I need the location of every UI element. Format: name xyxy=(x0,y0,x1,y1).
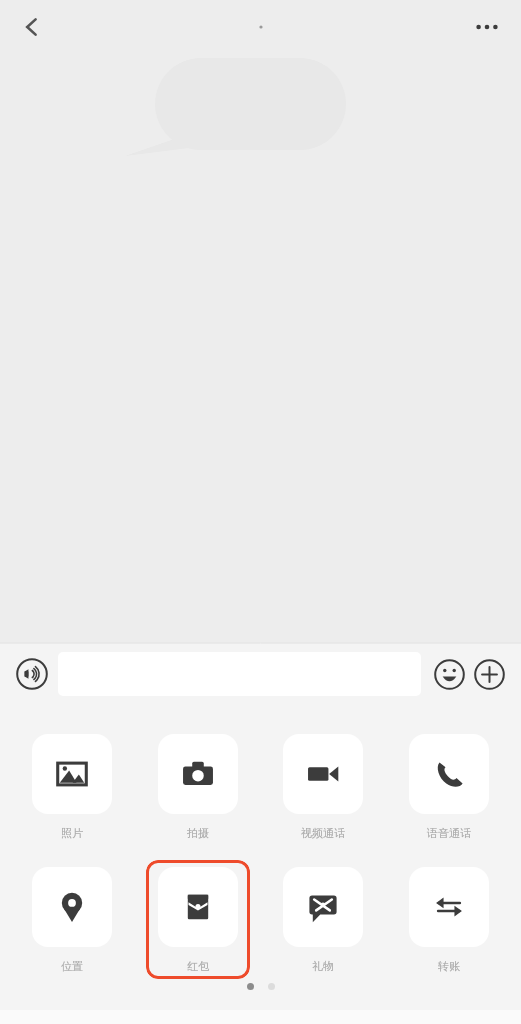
button[interactable]: More attachments xyxy=(469,654,509,694)
button[interactable]: Emoji xyxy=(429,654,469,694)
button[interactable]: 礼物 xyxy=(271,860,375,979)
button[interactable]: 拍摄 xyxy=(146,727,250,846)
button[interactable]: 位置 xyxy=(20,860,124,979)
button[interactable]: 照片 xyxy=(20,727,124,846)
staticText: 拍摄 xyxy=(187,826,209,840)
staticText: 语音通话 xyxy=(427,826,471,840)
staticText: 红包 xyxy=(187,959,209,973)
button[interactable]: 红包 xyxy=(146,860,250,979)
button[interactable]: 视频通话 xyxy=(271,727,375,846)
button[interactable]: 转账 xyxy=(397,860,501,979)
button[interactable]: Back xyxy=(12,7,52,47)
staticText: 照片 xyxy=(61,826,83,840)
staticText: 视频通话 xyxy=(301,826,345,840)
staticText: 位置 xyxy=(61,959,83,973)
button[interactable]: Voice message xyxy=(12,654,52,694)
button[interactable]: More options xyxy=(465,5,509,49)
staticText: 转账 xyxy=(438,959,460,973)
staticText: 礼物 xyxy=(312,959,334,973)
button[interactable]: 语音通话 xyxy=(397,727,501,846)
